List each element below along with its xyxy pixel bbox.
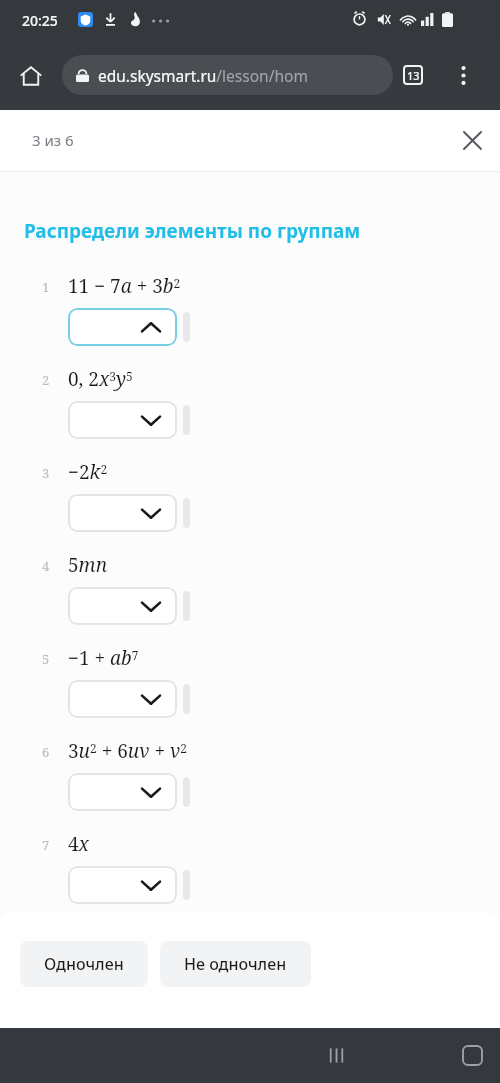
staticText: Одночлен bbox=[44, 953, 124, 975]
button[interactable]: Choose group bbox=[68, 866, 177, 904]
button[interactable]: Choose group bbox=[68, 680, 177, 718]
staticText: 4 bbox=[42, 557, 50, 575]
button[interactable]: More options bbox=[444, 56, 482, 94]
staticText: 3 из 6 bbox=[32, 130, 74, 150]
staticText: 11 − 7a + 3b2 bbox=[68, 273, 181, 299]
staticText: 13 bbox=[407, 68, 420, 83]
button[interactable]: Choose group bbox=[68, 494, 177, 532]
staticText: 20:25 bbox=[22, 11, 58, 30]
staticText: Распредели элементы по группам bbox=[24, 218, 361, 244]
button[interactable]: Choose group bbox=[68, 308, 177, 346]
staticText: 2 bbox=[42, 371, 50, 389]
button[interactable]: Close bbox=[450, 118, 494, 162]
button[interactable]: Одночлен bbox=[20, 941, 148, 987]
staticText: 5 bbox=[42, 650, 50, 668]
staticText: 0, 2x3y5 bbox=[68, 366, 133, 392]
staticText: 4x bbox=[68, 831, 89, 857]
button[interactable]: Tabs bbox=[396, 58, 430, 92]
button[interactable]: Не одночлен bbox=[160, 941, 311, 987]
staticText: 3 bbox=[42, 464, 50, 482]
button[interactable]: Home bbox=[10, 55, 52, 97]
button[interactable]: edu.skysmart.ru/lesson/hom bbox=[62, 55, 393, 95]
button[interactable]: Choose group bbox=[68, 773, 177, 811]
staticText: 5mn bbox=[68, 552, 108, 578]
staticText: 3u2 + 6uv + v2 bbox=[68, 738, 187, 764]
staticText: Не одночлен bbox=[184, 953, 287, 975]
staticText: −1 + ab7 bbox=[68, 645, 139, 671]
staticText: 1 bbox=[42, 278, 50, 296]
staticText: edu.skysmart.ru/lesson/hom bbox=[98, 65, 308, 86]
button[interactable]: Back bbox=[360, 1028, 500, 1083]
button[interactable]: Choose group bbox=[68, 401, 177, 439]
button[interactable]: Recent apps bbox=[86, 1028, 500, 1083]
button[interactable]: Choose group bbox=[68, 587, 177, 625]
staticText: 7 bbox=[42, 836, 50, 854]
staticText: −2k2 bbox=[68, 459, 108, 485]
button[interactable]: Home bbox=[222, 1028, 500, 1083]
staticText: 6 bbox=[42, 743, 50, 761]
